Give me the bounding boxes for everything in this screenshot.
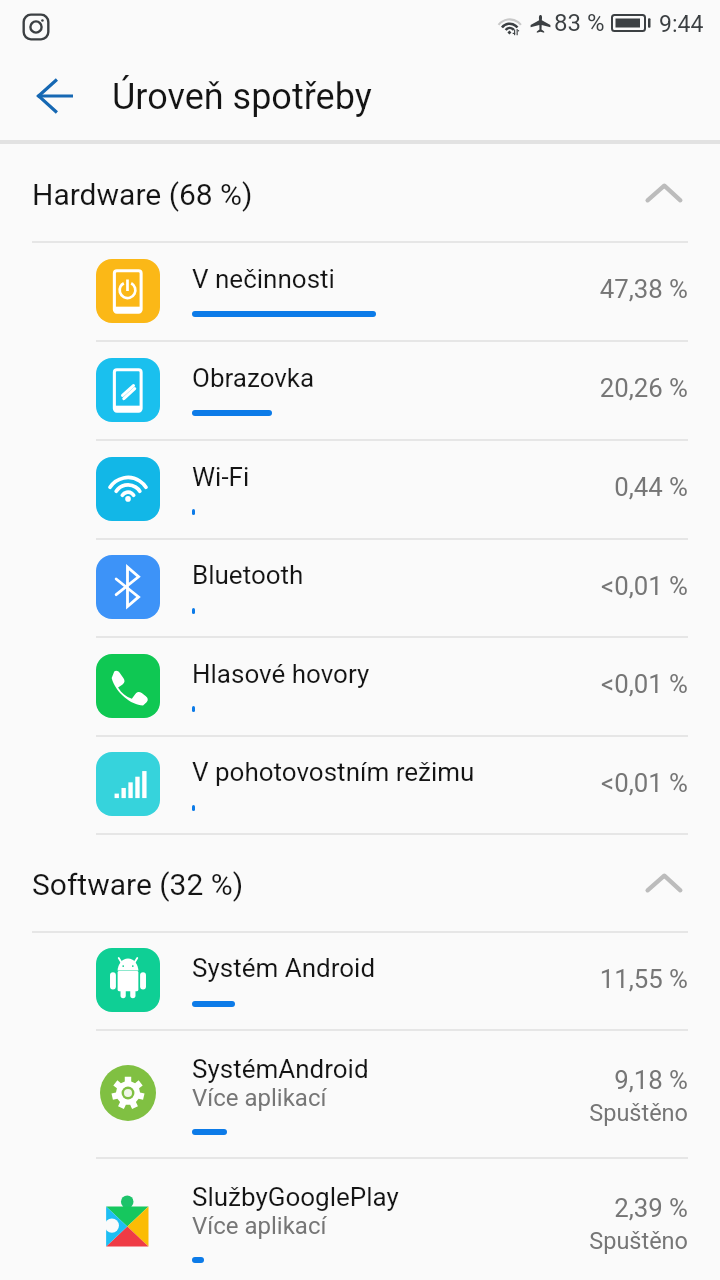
button[interactable] [0, 931, 720, 1029]
staticText: <0,01 % [288, 768, 688, 798]
button[interactable] [0, 636, 720, 735]
staticText: <0,01 % [288, 571, 688, 601]
staticText: Více aplikací [192, 1084, 327, 1112]
staticText: 9:44 [659, 11, 704, 38]
staticText: Hardware (68 %) [32, 177, 253, 212]
staticText: 47,38 % [288, 274, 688, 304]
staticText: <0,01 % [288, 669, 688, 699]
staticText: 2,39 % [288, 1193, 688, 1223]
button[interactable] [0, 538, 720, 636]
staticText: 20,26 % [288, 373, 688, 403]
staticText: 0,44 % [288, 472, 688, 502]
button[interactable] [0, 241, 720, 340]
staticText: 83 % [554, 9, 605, 37]
button[interactable] [0, 1029, 720, 1157]
staticText: Hlasové hovory [192, 659, 370, 689]
staticText: 9,18 % [288, 1065, 688, 1095]
staticText: Systém Android [192, 953, 376, 983]
button[interactable] [0, 439, 720, 538]
staticText: V nečinnosti [192, 264, 335, 294]
staticText: Software (32 %) [32, 867, 244, 902]
button[interactable] [0, 143, 720, 241]
staticText: Obrazovka [192, 363, 315, 393]
staticText: Více aplikací [192, 1212, 327, 1240]
staticText: 11,55 % [288, 964, 688, 994]
staticText: SystémAndroid [192, 1054, 369, 1084]
staticText: Spuštěno [288, 1227, 688, 1255]
staticText: Bluetooth [192, 560, 304, 590]
staticText: Wi-Fi [192, 462, 250, 492]
button[interactable]: Back [22, 63, 88, 129]
staticText: Úroveň spotřeby [112, 76, 372, 118]
button[interactable] [0, 735, 720, 833]
staticText: V pohotovostním režimu [192, 757, 475, 787]
button[interactable] [0, 1157, 720, 1280]
staticText: Spuštěno [288, 1099, 688, 1127]
button[interactable] [0, 833, 720, 931]
staticText: SlužbyGooglePlay [192, 1182, 399, 1212]
button[interactable] [0, 340, 720, 439]
